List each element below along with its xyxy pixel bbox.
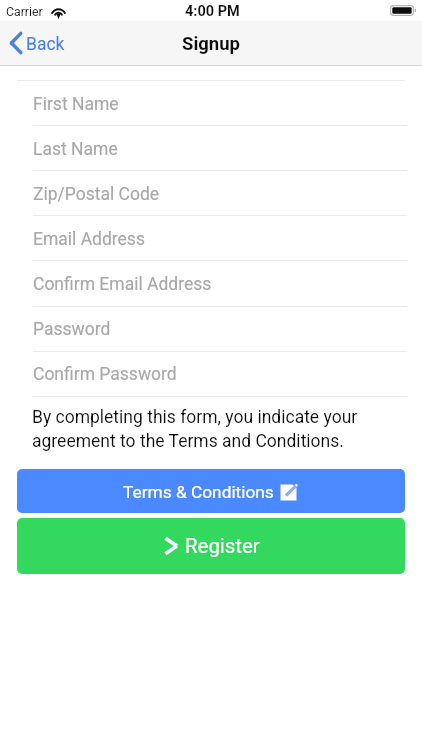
button[interactable]: Register xyxy=(17,518,405,574)
button[interactable]: Last Name xyxy=(0,127,422,172)
staticText: First Name xyxy=(33,94,119,115)
button[interactable]: First Name xyxy=(0,82,422,127)
staticText: Last Name xyxy=(33,139,118,160)
staticText: Back xyxy=(26,34,65,55)
staticText: Zip/Postal Code xyxy=(33,184,160,205)
button[interactable]: Email Address xyxy=(0,217,422,262)
staticText: Email Address xyxy=(33,229,145,250)
staticText: Terms & Conditions xyxy=(123,482,274,502)
button[interactable]: Back xyxy=(10,21,65,65)
staticText: Register xyxy=(185,534,260,558)
button[interactable]: Terms & Conditions xyxy=(17,469,405,513)
staticText: Signup xyxy=(0,33,422,55)
staticText: Confirm Email Address xyxy=(33,274,212,295)
button[interactable]: Password xyxy=(0,307,422,352)
button[interactable]: Confirm Password xyxy=(0,352,422,397)
staticText: 4:00 PM xyxy=(185,3,240,20)
staticText: By completing this form, you indicate yo… xyxy=(32,407,384,451)
staticText: Confirm Password xyxy=(33,364,177,385)
button[interactable]: Zip/Postal Code xyxy=(0,172,422,217)
other: Back xyxy=(10,32,22,54)
staticText: Carrier xyxy=(6,5,43,19)
button[interactable]: Confirm Email Address xyxy=(0,262,422,307)
staticText: Password xyxy=(33,319,111,340)
